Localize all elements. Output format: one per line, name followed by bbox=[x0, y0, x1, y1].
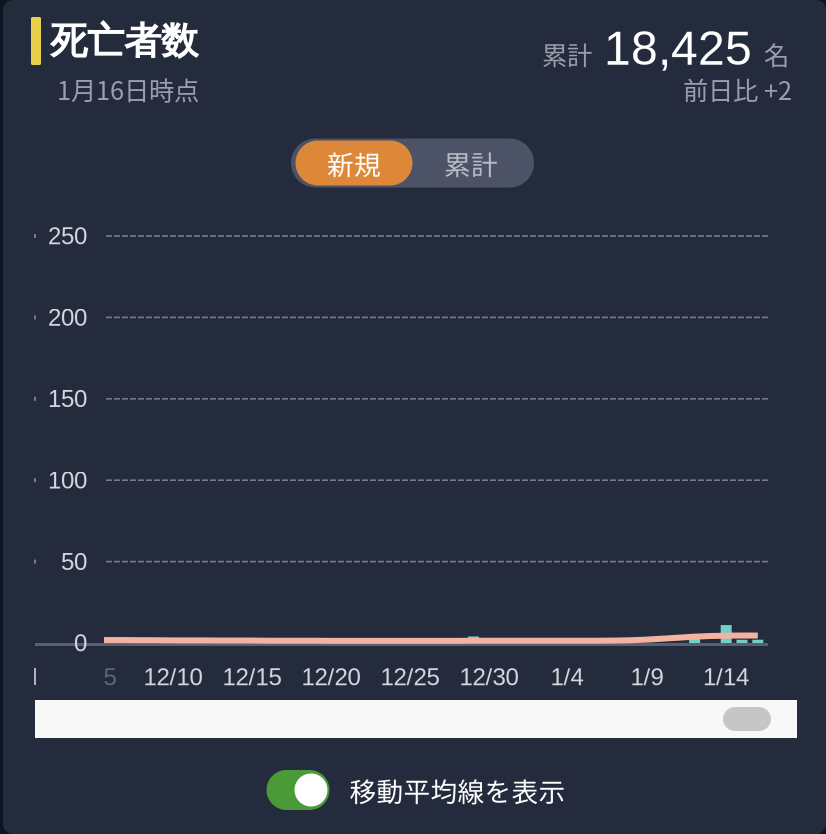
staticText: 1/9 bbox=[630, 664, 663, 690]
staticText: 12/25 bbox=[380, 664, 439, 690]
button[interactable] bbox=[35, 700, 797, 738]
staticText: 100 bbox=[48, 467, 87, 494]
staticText: 12/15 bbox=[222, 664, 281, 690]
staticText: 18,425 bbox=[604, 21, 752, 75]
staticText: 前日比 +2 bbox=[683, 71, 792, 107]
staticText: 12/20 bbox=[301, 664, 360, 690]
staticText: 1/14 bbox=[703, 664, 749, 690]
staticText: 12/10 bbox=[143, 664, 202, 690]
staticText: 250 bbox=[48, 223, 87, 249]
staticText: 12/30 bbox=[459, 664, 518, 690]
staticText: 0 bbox=[74, 630, 87, 656]
staticText: 1/4 bbox=[550, 664, 583, 690]
staticText: 死亡者数 bbox=[50, 17, 198, 64]
staticText: 200 bbox=[48, 304, 87, 331]
staticText: 累計 bbox=[542, 35, 592, 72]
staticText: 名 bbox=[764, 35, 789, 72]
staticText: 新規 bbox=[327, 144, 381, 182]
staticText: 1月16日時点 bbox=[57, 71, 199, 107]
staticText: 累計 bbox=[444, 144, 498, 182]
staticText: 移動平均線を表示 bbox=[349, 771, 565, 809]
button[interactable]: 移動平均線を表示 bbox=[266, 770, 565, 810]
staticText: 5 bbox=[103, 664, 116, 690]
staticText: 50 bbox=[61, 548, 87, 575]
button[interactable]: 新規 bbox=[295, 140, 412, 185]
button[interactable]: 累計 bbox=[412, 140, 529, 185]
staticText: 150 bbox=[48, 385, 87, 412]
